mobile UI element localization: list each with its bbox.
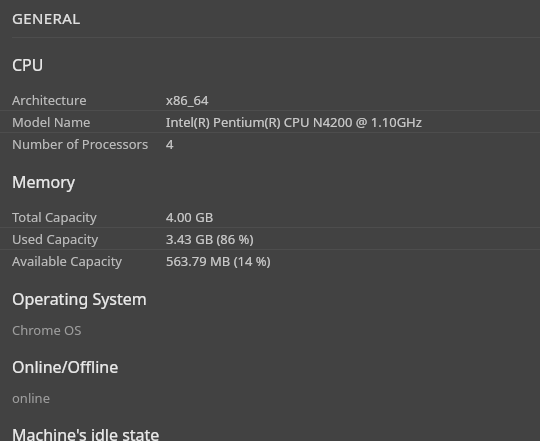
staticText: x86_64: [166, 91, 209, 109]
button[interactable]: Number of Processors: [0, 133, 540, 154]
staticText: 4.00 GB: [166, 208, 214, 226]
button[interactable]: Total Capacity: [0, 206, 540, 228]
staticText: Operating System: [12, 288, 147, 310]
staticText: online: [12, 389, 50, 407]
staticText: Architecture: [12, 91, 87, 109]
staticText: Number of Processors: [12, 135, 149, 153]
staticText: Machine's idle state: [12, 424, 160, 441]
staticText: Intel(R) Pentium(R) CPU N4200 @ 1.10GHz: [166, 113, 422, 131]
staticText: Chrome OS: [12, 321, 82, 339]
staticText: Used Capacity: [12, 230, 99, 248]
staticText: 4: [166, 135, 174, 153]
button[interactable]: Used Capacity: [0, 228, 540, 250]
button[interactable]: Chrome OS: [0, 319, 540, 341]
button[interactable]: Available Capacity: [0, 250, 540, 271]
staticText: Online/Offline: [12, 356, 119, 378]
staticText: Memory: [12, 171, 75, 193]
staticText: 3.43 GB (86 %): [166, 230, 254, 248]
button[interactable]: Model Name: [0, 111, 540, 133]
staticText: Model Name: [12, 113, 91, 131]
staticText: 563.79 MB (14 %): [166, 252, 271, 270]
staticText: Available Capacity: [12, 252, 122, 270]
button[interactable]: online: [0, 387, 540, 409]
staticText: Total Capacity: [12, 208, 97, 226]
staticText: CPU: [12, 54, 44, 76]
button[interactable]: Architecture: [0, 89, 540, 111]
staticText: GENERAL: [12, 8, 81, 28]
